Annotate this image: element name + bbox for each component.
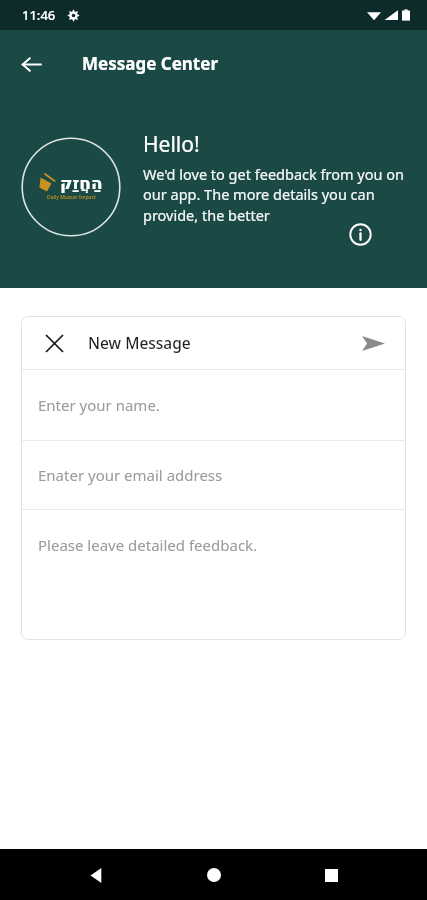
- staticText: Enter your name.: [38, 395, 160, 415]
- staticText: New Message: [88, 332, 191, 353]
- staticText: 11:46: [22, 6, 56, 24]
- staticText: Enater your email address: [38, 465, 223, 485]
- staticText: We'd love to get feedback from you on ou…: [143, 164, 421, 226]
- button[interactable]: Recent apps: [309, 853, 353, 897]
- button[interactable]: Close: [21, 316, 406, 369]
- button[interactable]: Back: [10, 43, 52, 85]
- button[interactable]: Home: [192, 853, 236, 897]
- staticText: Daily Mussar Impact: [47, 194, 96, 201]
- staticText: Message Center: [82, 52, 218, 75]
- button[interactable]: Back: [74, 853, 118, 897]
- button[interactable]: Please leave detailed feedback.: [21, 510, 406, 640]
- button[interactable]: Enater your email address: [21, 441, 406, 509]
- staticText: Hello!: [143, 130, 200, 159]
- staticText: הַחֲזַק: [60, 173, 103, 193]
- button[interactable]: Information: [345, 219, 375, 249]
- button[interactable]: Enter your name.: [21, 370, 406, 440]
- staticText: Please leave detailed feedback.: [38, 535, 258, 555]
- button[interactable]: Send: [356, 326, 390, 360]
- button[interactable]: Close: [41, 330, 67, 356]
